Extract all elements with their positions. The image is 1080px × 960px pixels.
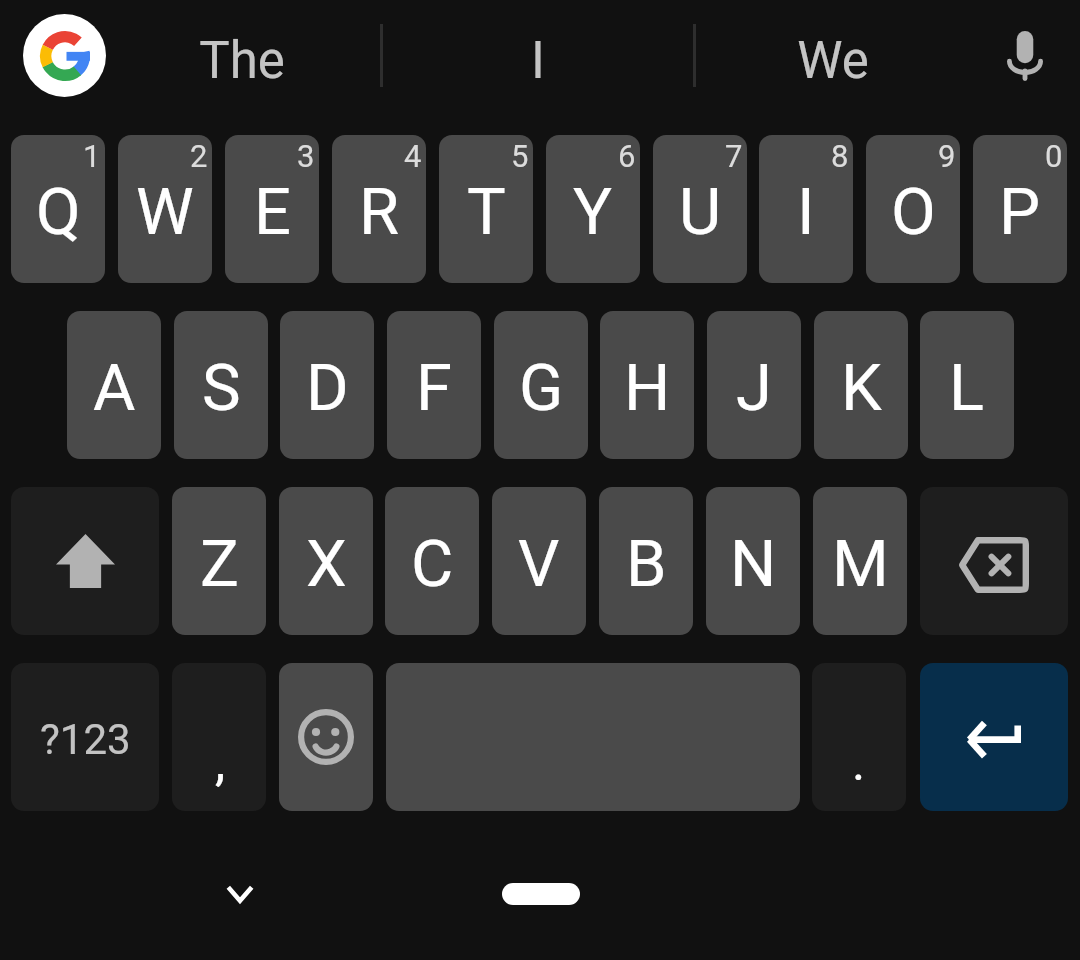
staticText: Q xyxy=(36,174,81,250)
staticText: S xyxy=(202,350,241,426)
button[interactable]: E xyxy=(225,135,319,283)
staticText: 5 xyxy=(511,138,529,174)
staticText: 2 xyxy=(190,138,208,174)
button[interactable]: T xyxy=(439,135,533,283)
button[interactable]: B xyxy=(599,487,693,635)
button[interactable]: D xyxy=(280,311,374,459)
staticText: D xyxy=(306,350,349,426)
staticText: I xyxy=(797,174,815,250)
staticText: C xyxy=(411,526,454,602)
staticText: K xyxy=(841,350,882,426)
button[interactable]: Shift xyxy=(11,487,159,635)
button[interactable]: ?123 xyxy=(11,663,159,811)
staticText: 8 xyxy=(831,138,849,174)
button[interactable]: H xyxy=(600,311,694,459)
button[interactable]: J xyxy=(707,311,801,459)
staticText: 1 xyxy=(83,138,101,174)
button[interactable]: Voice input xyxy=(975,10,1075,102)
button[interactable]: Y xyxy=(546,135,640,283)
staticText: Y xyxy=(573,174,613,250)
button[interactable]: Home xyxy=(502,883,580,905)
button[interactable]: F xyxy=(387,311,481,459)
button[interactable]: O xyxy=(866,135,960,283)
button[interactable]: R xyxy=(332,135,426,283)
staticText: E xyxy=(254,174,291,250)
staticText: J xyxy=(736,350,772,426)
staticText: M xyxy=(832,526,889,602)
staticText: T xyxy=(467,174,506,250)
staticText: R xyxy=(359,174,400,250)
staticText: We xyxy=(797,31,869,91)
button[interactable]: U xyxy=(653,135,747,283)
staticText: 9 xyxy=(938,138,956,174)
staticText: L xyxy=(949,350,985,426)
staticText: U xyxy=(679,174,722,250)
staticText: 7 xyxy=(725,138,743,174)
staticText: 3 xyxy=(297,138,315,174)
staticText: The xyxy=(199,31,285,91)
button[interactable]: C xyxy=(385,487,479,635)
button[interactable]: G xyxy=(494,311,588,459)
button[interactable]: . xyxy=(812,663,906,811)
button[interactable]: L xyxy=(920,311,1014,459)
staticText: , xyxy=(215,732,226,793)
staticText: 6 xyxy=(618,138,636,174)
button[interactable]: I xyxy=(381,12,694,104)
button[interactable]: Emoji xyxy=(279,663,373,811)
button[interactable]: P xyxy=(973,135,1067,283)
staticText: 0 xyxy=(1045,138,1063,174)
staticText: A xyxy=(93,350,136,426)
button[interactable]: Q xyxy=(11,135,105,283)
staticText: G xyxy=(519,350,564,426)
staticText: 4 xyxy=(404,138,422,174)
staticText: W xyxy=(136,174,194,250)
button[interactable]: V xyxy=(492,487,586,635)
button[interactable]: A xyxy=(67,311,161,459)
button[interactable]: Enter xyxy=(920,663,1068,811)
button[interactable]: We xyxy=(696,12,970,104)
button[interactable]: I xyxy=(759,135,853,283)
button[interactable]: Z xyxy=(172,487,266,635)
button[interactable]: W xyxy=(118,135,212,283)
staticText: X xyxy=(306,526,347,602)
button[interactable]: K xyxy=(814,311,908,459)
button[interactable]: M xyxy=(813,487,907,635)
button[interactable]: N xyxy=(706,487,800,635)
staticText: I xyxy=(531,31,545,91)
staticText: F xyxy=(416,350,452,426)
button[interactable]: Backspace xyxy=(920,487,1068,635)
staticText: V xyxy=(518,526,560,602)
staticText: O xyxy=(891,174,936,250)
button[interactable]: X xyxy=(279,487,373,635)
staticText: Z xyxy=(200,526,239,602)
button[interactable]: Google search xyxy=(23,14,106,97)
staticText: H xyxy=(624,350,671,426)
button[interactable]: The xyxy=(105,12,379,104)
staticText: B xyxy=(626,526,667,602)
staticText: P xyxy=(999,174,1041,250)
staticText: N xyxy=(730,526,777,602)
staticText: ?123 xyxy=(40,715,131,764)
button[interactable]: , xyxy=(172,663,266,811)
staticText: . xyxy=(852,734,866,793)
button[interactable]: S xyxy=(174,311,268,459)
button[interactable]: Hide keyboard xyxy=(190,850,290,938)
